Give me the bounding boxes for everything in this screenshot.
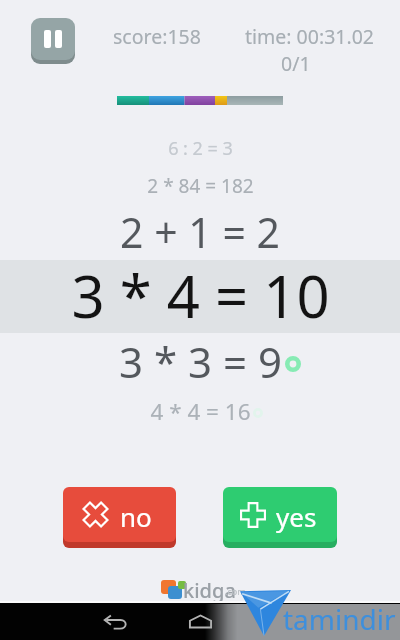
staticText: time: 00:31.02: [245, 23, 374, 50]
staticText: yes: [276, 499, 317, 534]
staticText: score:158: [113, 23, 201, 50]
staticText: kidga: [183, 577, 236, 604]
staticText: 3 * 4 = 10: [71, 256, 330, 335]
button[interactable]: no: [63, 487, 176, 548]
staticText: 4 * 4 = 16: [150, 396, 251, 427]
staticText: 2 * 84 = 182: [147, 173, 254, 199]
staticText: 6 : 2 = 3: [168, 136, 233, 161]
staticText: 3 * 3 = 9: [119, 333, 282, 390]
staticText: tamindir: [283, 600, 396, 638]
staticText: .com: [225, 585, 246, 597]
button[interactable]: Recent apps: [257, 604, 311, 640]
button[interactable]: yes: [223, 487, 337, 548]
staticText: 0/1: [281, 50, 311, 77]
staticText: 2 + 1 = 2: [120, 204, 280, 260]
staticText: no: [120, 499, 152, 534]
button[interactable]: Home: [173, 603, 227, 639]
button[interactable]: Pause: [31, 18, 75, 64]
button[interactable]: Back: [88, 604, 142, 640]
